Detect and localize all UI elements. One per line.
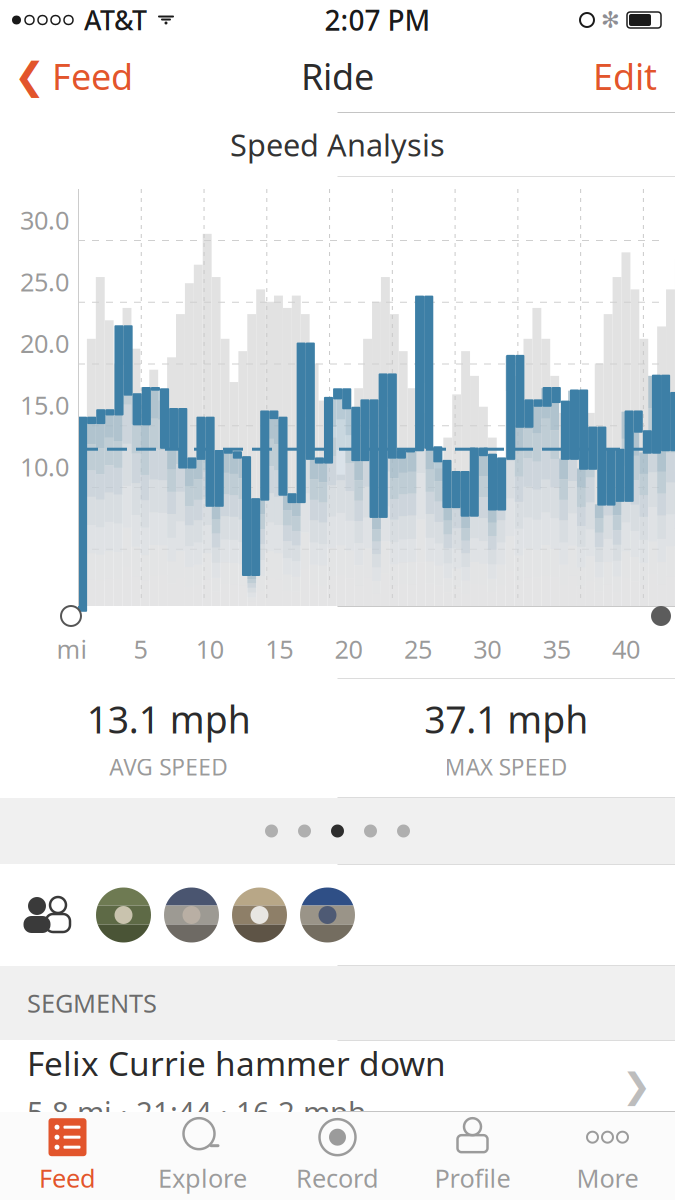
button[interactable]: Page 3 of 5 [0, 798, 675, 864]
button[interactable]: Profile [405, 1112, 540, 1200]
staticText: 10.0 [20, 450, 69, 483]
staticText: Feed [52, 52, 133, 100]
staticText: SEGMENTS [27, 986, 157, 1020]
button[interactable]: Record [270, 1112, 405, 1200]
staticText: 15 [265, 632, 293, 666]
staticText: 15.0 [20, 388, 69, 422]
staticText: 37.1 mph [424, 694, 588, 744]
staticText: ❯ [622, 1066, 651, 1106]
staticText: 35 [543, 632, 571, 666]
staticText: 5 [133, 632, 147, 666]
staticText: 2:07 PM [324, 1, 430, 39]
button[interactable]: Feed [0, 1112, 135, 1200]
button[interactable]: Athlete 1 [96, 887, 151, 942]
staticText: Edit [593, 52, 657, 100]
staticText: Speed Analysis [230, 124, 445, 165]
staticText: Ride [301, 52, 374, 100]
staticText: Felix Currie hammer down [27, 1041, 446, 1085]
staticText: 13.1 mph [87, 694, 251, 744]
staticText: 10 [196, 632, 224, 666]
button[interactable]: Athlete 2 [164, 887, 219, 942]
staticText: 25 [404, 632, 432, 666]
staticText: 20.0 [20, 326, 69, 360]
staticText: 20 [334, 632, 362, 666]
staticText: Feed [39, 1161, 96, 1195]
staticText: 40 [612, 632, 640, 666]
staticText: 30.0 [20, 203, 69, 237]
button[interactable]: Edit [593, 44, 675, 108]
button[interactable]: More [540, 1112, 675, 1200]
staticText: 30 [473, 632, 501, 666]
button[interactable]: Athlete 4 [300, 887, 355, 942]
button[interactable]: ❮ [0, 44, 133, 108]
staticText: Record [296, 1161, 379, 1195]
staticText: More [576, 1161, 638, 1195]
staticText: ✻ [601, 7, 620, 33]
button[interactable]: Athlete 3 [232, 887, 287, 942]
button[interactable]: Felix Currie hammer down [0, 1041, 675, 1111]
staticText: MAX SPEED [445, 752, 568, 782]
staticText: Explore [158, 1161, 247, 1195]
staticText: AT&T [84, 2, 147, 38]
staticText: AVG SPEED [109, 752, 228, 782]
staticText: 25.0 [20, 265, 69, 298]
staticText: 5.8 mi · 21:44 · 16.2 mph [27, 1092, 366, 1131]
staticText: Profile [434, 1161, 510, 1195]
button[interactable]: Athletes [22, 887, 76, 942]
staticText: ❮ [14, 55, 45, 97]
staticText: mi [56, 632, 87, 666]
button[interactable]: Explore [135, 1112, 270, 1200]
